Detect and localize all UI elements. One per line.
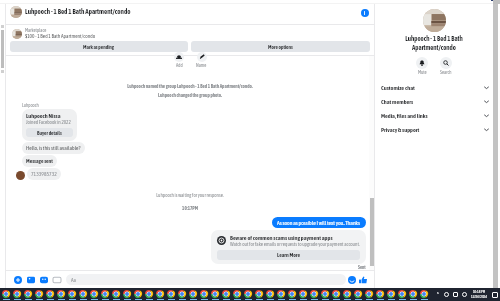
- staticText: Sent: [358, 265, 366, 270]
- button[interactable]: Conversation information: [361, 9, 369, 17]
- staticText: Media, files and links: [381, 112, 428, 119]
- staticText: More options: [268, 44, 293, 50]
- button[interactable]: Add: [174, 52, 184, 62]
- staticText: Customize chat: [381, 84, 415, 91]
- staticText: Joined Facebook in 2022: [26, 119, 71, 125]
- staticText: Buyer details: [37, 130, 62, 136]
- staticText: Learn More: [277, 252, 301, 258]
- staticText: i: [364, 10, 366, 16]
- button[interactable]: Chat members: [375, 94, 493, 108]
- staticText: Beware of common scams using payment app…: [230, 234, 333, 241]
- button[interactable]: Add attachment: [14, 276, 22, 284]
- staticText: Add: [176, 63, 183, 68]
- button[interactable]: Stickers: [40, 276, 48, 284]
- button[interactable]: Media, files and links: [375, 108, 493, 122]
- staticText: As soon as possible I will text you..Tha…: [277, 220, 361, 226]
- staticText: Luhpooch is waiting for your response.: [6, 192, 374, 198]
- staticText: Luhpooch named the group Luhpooch - 1 Be…: [6, 83, 374, 89]
- button[interactable]: Photos: [27, 276, 35, 284]
- button[interactable]: Mute: [416, 57, 428, 69]
- button[interactable]: Name: [197, 52, 207, 62]
- staticText: Mark as pending: [83, 44, 115, 50]
- staticText: Aa: [71, 277, 76, 283]
- button[interactable]: Mark as pending: [10, 41, 188, 52]
- button[interactable]: Aa: [66, 274, 346, 285]
- staticText: Name: [196, 63, 207, 68]
- button[interactable]: More options: [191, 41, 370, 52]
- staticText: Luhpooch changed the group photo.: [6, 92, 374, 98]
- button[interactable]: Send a like: [359, 276, 367, 284]
- staticText: 7133985732: [31, 171, 57, 177]
- staticText: Privacy & support: [381, 126, 420, 133]
- staticText: Hello, is this still available?: [26, 145, 81, 151]
- staticText: Chat members: [381, 98, 414, 105]
- button[interactable]: Emoji: [348, 276, 356, 284]
- staticText: Luhpooch - 1 Bed 1 Bath Apartment/condo: [375, 35, 493, 52]
- staticText: Message sent: [26, 158, 53, 164]
- staticText: Watch out for fake emails or requests to…: [230, 241, 360, 247]
- staticText: Luhpooch Nissa: [26, 112, 61, 119]
- staticText: Marketplace: [25, 28, 47, 33]
- button[interactable]: Customize chat: [375, 80, 493, 94]
- button[interactable]: GIF: [53, 276, 61, 284]
- staticText: $100 - 1 Bed 1 Bath Apartment/condo: [25, 33, 96, 39]
- button[interactable]: Privacy & support: [375, 122, 493, 136]
- button[interactable]: Buyer details: [26, 128, 73, 137]
- staticText: Search: [440, 70, 452, 75]
- button[interactable]: Learn More: [217, 250, 360, 260]
- staticText: Luhpooch - 1 Bed 1 Bath Apartment/condo: [25, 8, 131, 16]
- staticText: Mute: [418, 70, 427, 75]
- staticText: 10:17PM: [6, 205, 374, 211]
- button[interactable]: Search: [440, 57, 452, 69]
- staticText: 10:18 PM 12/26/2024: [471, 290, 487, 299]
- staticText: ^: [437, 292, 439, 297]
- staticText: Luhpooch: [22, 103, 39, 108]
